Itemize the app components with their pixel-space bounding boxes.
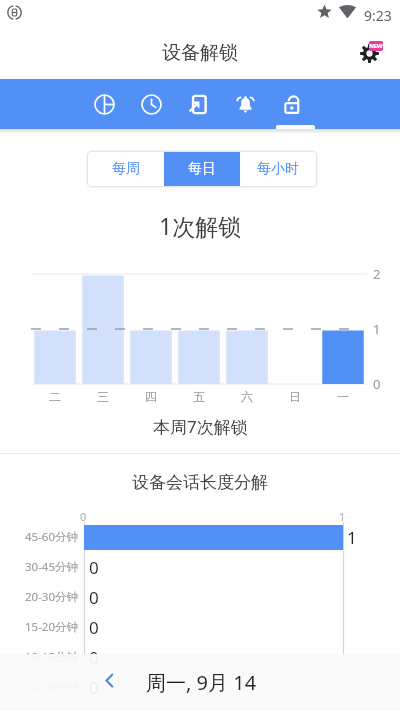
staticText: NEW: [369, 42, 383, 50]
button[interactable]: 每周: [88, 152, 164, 186]
staticText: 30-45分钟: [25, 559, 79, 575]
staticText: 周一, 9月 14: [146, 669, 257, 696]
button[interactable]: Settings: [356, 35, 396, 75]
staticText: 三: [97, 389, 109, 404]
staticText: 45-60分钟: [25, 529, 79, 545]
button[interactable]: Device unlocks: [269, 79, 316, 129]
staticText: 五: [193, 389, 205, 404]
staticText: 0: [373, 375, 381, 393]
button[interactable]: 每小时: [240, 152, 316, 186]
staticText: 15-20分钟: [25, 619, 79, 635]
staticText: 本周7次解锁: [153, 415, 248, 438]
staticText: 9:23: [364, 6, 392, 25]
staticText: 2: [373, 265, 381, 283]
staticText: 1次解锁: [159, 210, 242, 240]
staticText: 六: [241, 389, 253, 404]
staticText: 二: [49, 389, 61, 404]
button[interactable]: Notifications: [222, 79, 269, 129]
button[interactable]: Usage clock: [128, 79, 175, 129]
button[interactable]: 每日: [164, 152, 240, 186]
staticText: 四: [145, 389, 157, 404]
staticText: 日: [289, 389, 301, 404]
staticText: 设备会话长度分解: [132, 472, 268, 493]
staticText: 设备解锁: [162, 41, 238, 65]
staticText: 0: [89, 646, 99, 669]
staticText: 1: [347, 526, 357, 549]
staticText: 一: [337, 389, 349, 404]
staticText: 10-15分钟: [25, 649, 79, 665]
staticText: 0: [89, 586, 99, 609]
button[interactable]: Previous day: [97, 668, 121, 692]
button[interactable]: Screen time: [81, 79, 128, 129]
staticText: 每小时: [257, 160, 299, 178]
staticText: 每日: [188, 160, 216, 178]
staticText: 每周: [112, 160, 140, 178]
staticText: 0: [89, 556, 99, 579]
staticText: 1: [339, 509, 346, 522]
staticText: 0: [80, 509, 87, 522]
staticText: 1: [373, 320, 381, 338]
staticText: 0: [89, 616, 99, 639]
button[interactable]: App launches: [175, 79, 222, 129]
staticText: 0: [89, 676, 99, 699]
staticText: 20-30分钟: [25, 589, 79, 605]
